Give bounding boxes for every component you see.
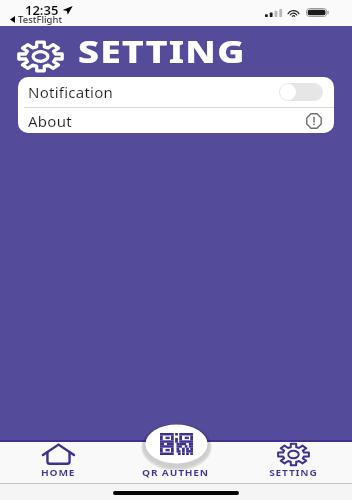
button[interactable]: QR Authen	[144, 423, 209, 465]
staticText: TestFlight	[18, 13, 63, 26]
button[interactable]: SETTING	[235, 440, 352, 478]
staticText: SETTING	[78, 31, 247, 72]
staticText: About	[28, 111, 72, 131]
staticText: QR AUTHEN	[142, 466, 210, 478]
button[interactable]: About	[18, 108, 334, 133]
button[interactable]: Notification	[18, 77, 334, 107]
button[interactable]: HOME	[0, 440, 117, 478]
button[interactable]: Notification toggle	[279, 83, 323, 101]
button[interactable]: QR AUTHEN	[117, 440, 235, 478]
staticText: Notification	[28, 82, 114, 102]
staticText: 12:35	[25, 1, 59, 19]
staticText: SETTING	[269, 466, 318, 478]
staticText: HOME	[41, 466, 76, 478]
